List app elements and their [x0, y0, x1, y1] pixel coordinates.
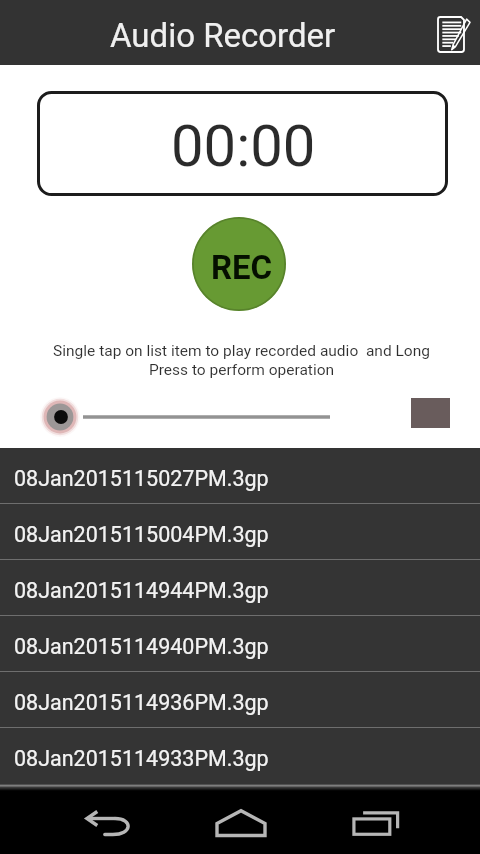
button[interactable]: REC — [192, 217, 286, 311]
button[interactable]: 08Jan2015114933PM.3gp — [0, 728, 480, 784]
button[interactable]: 08Jan2015115027PM.3gp — [0, 448, 480, 504]
staticText: 08Jan2015114940PM.3gp — [14, 634, 269, 659]
staticText: 08Jan2015114944PM.3gp — [14, 578, 269, 603]
staticText: 08Jan2015115027PM.3gp — [14, 466, 269, 491]
staticText: 08Jan2015114933PM.3gp — [14, 746, 269, 771]
staticText: 00:00 — [171, 112, 316, 180]
button[interactable]: 08Jan2015114936PM.3gp — [0, 672, 480, 728]
button[interactable]: Notes — [426, 9, 474, 57]
staticText: Single tap on list item to play recorded… — [50, 342, 433, 378]
staticText: 08Jan2015114936PM.3gp — [14, 690, 269, 715]
button[interactable]: 08Jan2015114944PM.3gp — [0, 560, 480, 616]
staticText: REC — [211, 248, 273, 287]
button[interactable]: 08Jan2015115004PM.3gp — [0, 504, 480, 560]
button[interactable]: Back — [75, 797, 143, 849]
button[interactable]: Home — [207, 797, 275, 849]
button[interactable]: Recents — [342, 797, 410, 849]
button[interactable]: 08Jan2015114940PM.3gp — [0, 616, 480, 672]
staticText: Audio Recorder — [110, 16, 336, 55]
staticText: 08Jan2015115004PM.3gp — [14, 522, 269, 547]
